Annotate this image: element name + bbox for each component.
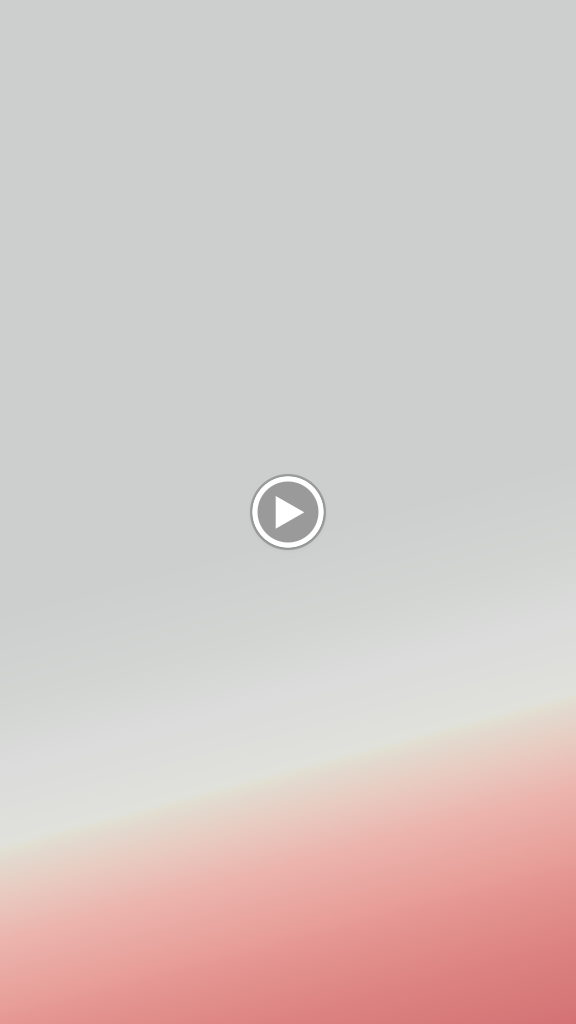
button[interactable]: Play — [252, 476, 324, 548]
